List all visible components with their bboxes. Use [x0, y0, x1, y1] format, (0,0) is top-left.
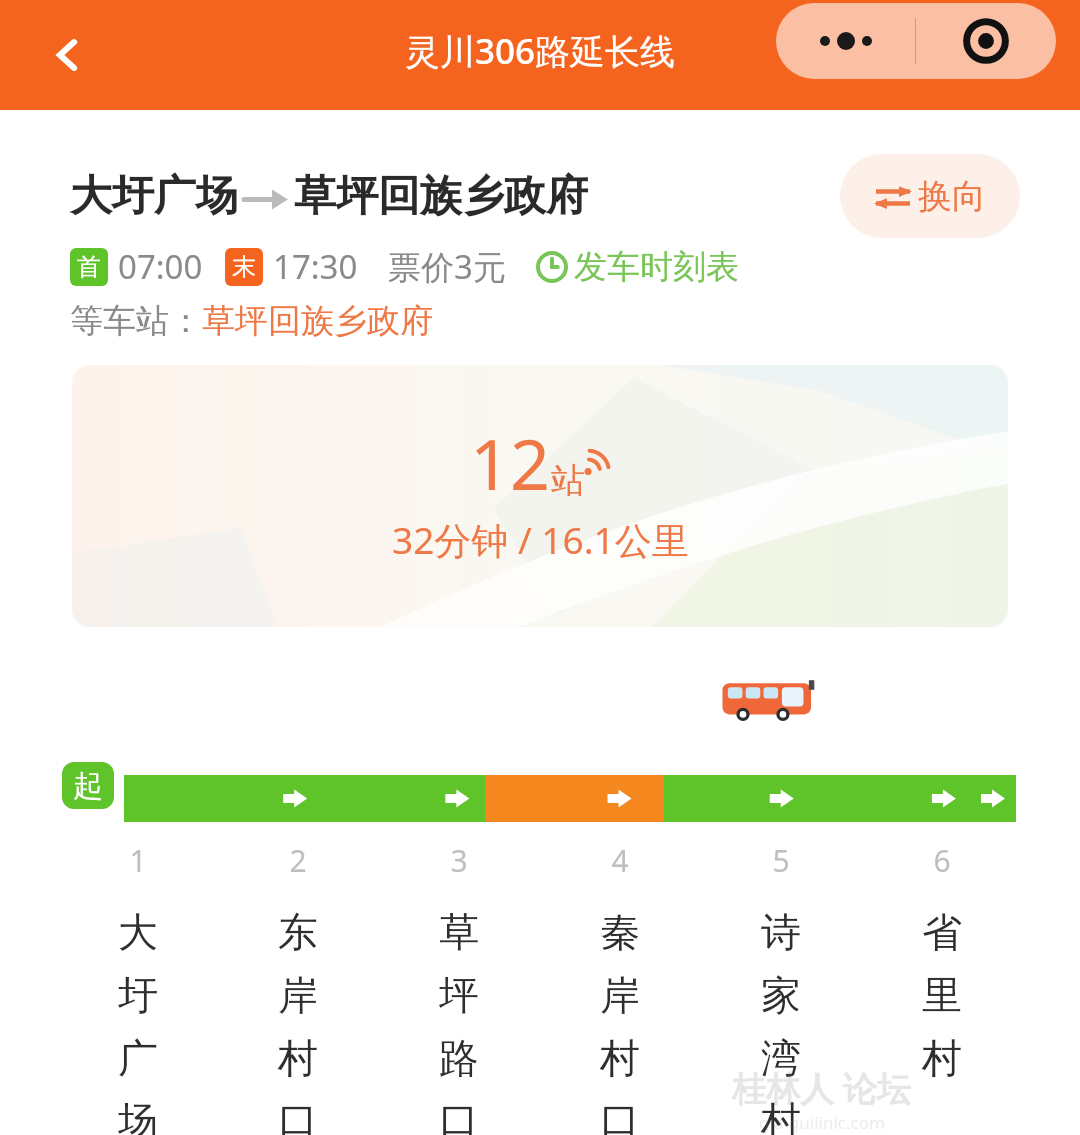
staticText: 6: [933, 840, 951, 881]
staticText: 村: [922, 1033, 962, 1083]
staticText: 等车站：: [70, 300, 202, 342]
staticText: 省: [922, 907, 962, 957]
staticText: 秦: [600, 907, 640, 957]
button[interactable]: 6: [861, 840, 1022, 1096]
staticText: 草: [439, 907, 479, 957]
staticText: 村: [600, 1033, 640, 1083]
staticText: 2: [289, 840, 307, 881]
staticText: 5: [772, 840, 790, 881]
staticText: 岸: [278, 970, 318, 1020]
button[interactable]: 发车时刻表: [536, 246, 739, 288]
staticText: 村: [278, 1033, 318, 1083]
staticText: 坪: [439, 970, 479, 1020]
staticText: 起: [73, 767, 103, 805]
staticText: 口: [439, 1096, 479, 1135]
staticText: 灵川306路延长线: [405, 27, 676, 75]
staticText: 票价3元: [388, 244, 506, 289]
staticText: 桂林人 论坛: [732, 1065, 911, 1111]
button[interactable]: Close: [916, 3, 1056, 79]
staticText: 3: [450, 840, 468, 881]
staticText: 大圩广场: [70, 170, 238, 223]
staticText: 末: [232, 252, 256, 282]
staticText: 东: [278, 907, 318, 957]
staticText: 里: [922, 970, 962, 1020]
staticText: 广: [118, 1033, 158, 1083]
staticText: 12: [470, 415, 551, 510]
staticText: 32分钟 / 16.1公里: [392, 514, 689, 565]
button[interactable]: 5: [700, 840, 861, 1135]
button[interactable]: More: [776, 3, 915, 79]
staticText: 口: [278, 1096, 318, 1135]
button[interactable]: 2: [218, 840, 378, 1135]
staticText: 站: [551, 459, 585, 502]
staticText: 场: [118, 1096, 158, 1135]
button[interactable]: 4: [539, 840, 700, 1135]
staticText: 换向: [918, 175, 986, 218]
staticText: gla-guilinlc.com: [759, 1111, 885, 1134]
staticText: 草坪回族乡政府: [294, 170, 588, 223]
staticText: 路: [439, 1033, 479, 1083]
staticText: 17:30: [273, 244, 358, 289]
button[interactable]: 换向: [840, 154, 1020, 238]
staticText: 首: [77, 252, 101, 282]
staticText: 圩: [118, 970, 158, 1020]
staticText: 家: [761, 970, 801, 1020]
staticText: 岸: [600, 970, 640, 1020]
staticText: 4: [611, 840, 629, 881]
staticText: 草坪回族乡政府: [202, 300, 433, 342]
staticText: 1: [129, 840, 147, 881]
button[interactable]: 3: [378, 840, 539, 1135]
staticText: 07:00: [118, 244, 203, 289]
staticText: 口: [600, 1096, 640, 1135]
staticText: 湾: [761, 1033, 801, 1083]
staticText: 诗: [761, 907, 801, 957]
staticText: 大: [118, 907, 158, 957]
button[interactable]: Back: [40, 27, 96, 83]
staticText: 发车时刻表: [574, 246, 739, 288]
button[interactable]: 1: [58, 840, 218, 1135]
staticText: 村: [761, 1096, 801, 1135]
